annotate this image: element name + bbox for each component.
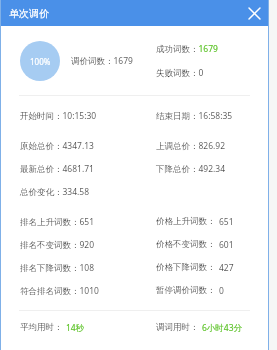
staticText: 价格上升词数： xyxy=(156,216,216,227)
staticText: 失败词数：0 xyxy=(156,67,204,79)
staticText: 结束日期：16:58:35 xyxy=(156,110,233,122)
staticText: 符合排名词数：1010 xyxy=(20,285,99,297)
staticText: 上调总价：826.92 xyxy=(156,140,226,152)
staticText: 开始时间：10:15:30 xyxy=(20,110,97,122)
staticText: 427 xyxy=(219,262,234,274)
staticText: 最新总价：4681.71 xyxy=(20,163,94,175)
button[interactable]: Close xyxy=(245,4,263,22)
staticText: 单次调价 xyxy=(9,7,49,20)
staticText: 成功词数：1679 xyxy=(156,43,218,55)
staticText: 下降总价：492.34 xyxy=(156,163,226,175)
staticText: 651 xyxy=(219,216,234,228)
staticText: 排名下降词数：108 xyxy=(20,262,95,274)
staticText: 总价变化：334.58 xyxy=(20,186,90,198)
staticText: 0 xyxy=(219,285,224,297)
staticText: 暂停调价词数： xyxy=(156,285,216,296)
staticText: 100% xyxy=(30,56,51,67)
staticText: 原始总价：4347.13 xyxy=(20,140,94,152)
staticText: 6小时43分 xyxy=(202,322,243,334)
staticText: 平均用时： xyxy=(20,322,63,333)
staticText: 排名不变词数：920 xyxy=(20,239,95,251)
staticText: 601 xyxy=(219,239,234,251)
staticText: 排名上升词数：651 xyxy=(20,216,95,228)
staticText: 调价词数：1679 xyxy=(71,55,133,67)
staticText: 价格下降词数： xyxy=(156,262,216,273)
staticText: 14秒 xyxy=(66,322,85,334)
staticText: 价格不变词数： xyxy=(156,239,216,250)
staticText: 调词用时： xyxy=(156,322,199,333)
